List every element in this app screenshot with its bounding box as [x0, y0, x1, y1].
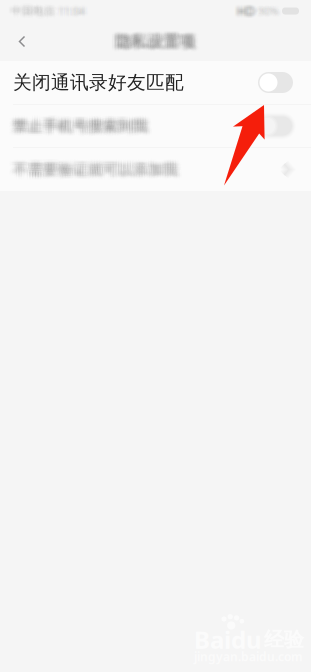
staticText: 禁止手机号搜索到我: [15, 119, 150, 137]
staticText: 隐私设置项: [121, 30, 201, 49]
staticText: 不需要验证就可以添加我: [19, 160, 184, 178]
staticText: 禁止手机号搜索到我: [13, 116, 148, 134]
staticText: 不需要验证就可以添加我: [19, 159, 184, 177]
staticText: 禁止手机号搜索到我: [19, 115, 154, 133]
staticText: 中国电信: [11, 6, 55, 19]
staticText: 禁止手机号搜索到我: [18, 117, 153, 135]
staticText: 11:04: [58, 2, 85, 16]
staticText: 90%: [256, 7, 277, 21]
staticText: 90%: [254, 4, 275, 18]
staticText: 11:04: [62, 1, 89, 15]
staticText: HD: [242, 4, 260, 20]
staticText: 90%: [262, 3, 283, 17]
staticText: 中国电信: [16, 6, 60, 19]
staticText: 隐私设置项: [120, 33, 200, 52]
staticText: 隐私设置项: [115, 31, 195, 50]
staticText: 11:04: [55, 5, 82, 19]
staticText: 11:04: [53, 7, 80, 21]
staticText: 11:04: [61, 2, 88, 16]
staticText: 90%: [257, 5, 278, 19]
staticText: 不需要验证就可以添加我: [10, 159, 175, 177]
staticText: 禁止手机号搜索到我: [11, 121, 146, 139]
staticText: 90%: [254, 5, 275, 19]
staticText: 11:04: [54, 2, 81, 16]
staticText: 中国电信: [16, 5, 60, 18]
staticText: 90%: [253, 6, 274, 20]
staticText: 90%: [256, 1, 277, 15]
staticText: 隐私设置项: [110, 29, 190, 48]
staticText: 中国电信: [8, 7, 52, 20]
staticText: HD: [239, 0, 257, 16]
staticText: 不需要验证就可以添加我: [8, 158, 173, 176]
staticText: 禁止手机号搜索到我: [8, 115, 143, 133]
button[interactable]: 关闭通讯录好友匹配: [0, 61, 311, 104]
staticText: 隐私设置项: [117, 33, 197, 52]
staticText: 11:04: [63, 2, 90, 16]
staticText: 11:04: [54, 6, 81, 20]
staticText: 禁止手机号搜索到我: [6, 118, 141, 136]
staticText: 中国电信: [14, 5, 58, 18]
staticText: 90%: [258, 1, 279, 15]
staticText: 11:04: [55, 4, 82, 18]
staticText: 11:04: [62, 4, 89, 18]
staticText: 中国电信: [12, 7, 56, 20]
staticText: 不需要验证就可以添加我: [19, 163, 184, 181]
staticText: HD: [237, 2, 255, 18]
staticText: 90%: [263, 4, 284, 18]
staticText: 中国电信: [12, 4, 56, 17]
staticText: 11:04: [61, 5, 88, 19]
staticText: 不需要验证就可以添加我: [6, 157, 171, 175]
staticText: 禁止手机号搜索到我: [18, 119, 153, 137]
button[interactable]: 不需要验证就可以添加我: [0, 148, 311, 191]
staticText: 90%: [260, 5, 281, 19]
staticText: 中国电信: [8, 2, 52, 16]
staticText: 中国电信: [6, 7, 50, 20]
staticText: 11:04: [53, 6, 80, 20]
staticText: 隐私设置项: [117, 32, 197, 51]
staticText: 不需要验证就可以添加我: [10, 162, 175, 180]
staticText: 不需要验证就可以添加我: [16, 163, 181, 181]
staticText: 中国电信: [7, 1, 51, 15]
staticText: 不需要验证就可以添加我: [19, 158, 184, 176]
staticText: 隐私设置项: [115, 34, 195, 53]
staticText: 禁止手机号搜索到我: [8, 117, 143, 135]
staticText: 11:04: [58, 7, 85, 21]
button[interactable]: 禁止手机号搜索到我: [0, 104, 311, 147]
staticText: 关闭通讯录好友匹配: [13, 71, 184, 94]
staticText: 中国电信: [12, 6, 56, 19]
staticText: HD: [239, 5, 257, 21]
staticText: 不需要验证就可以添加我: [11, 162, 176, 180]
staticText: 中国电信: [11, 1, 55, 15]
staticText: 11:04: [63, 6, 90, 20]
staticText: HD: [238, 1, 256, 17]
staticText: 隐私设置项: [114, 34, 194, 53]
staticText: 禁止手机号搜索到我: [15, 117, 150, 135]
staticText: 90%: [258, 7, 279, 21]
staticText: 禁止手机号搜索到我: [11, 116, 146, 134]
staticText: 禁止手机号搜索到我: [6, 117, 141, 135]
staticText: 不需要验证就可以添加我: [11, 164, 176, 182]
staticText: 禁止手机号搜索到我: [10, 117, 145, 135]
staticText: 不需要验证就可以添加我: [13, 159, 178, 177]
staticText: 禁止手机号搜索到我: [10, 121, 145, 139]
staticText: 禁止手机号搜索到我: [8, 118, 143, 136]
button[interactable]: Back: [0, 25, 44, 57]
staticText: 中国电信: [12, 2, 56, 16]
staticText: 禁止手机号搜索到我: [15, 118, 150, 136]
staticText: 禁止手机号搜索到我: [16, 115, 151, 133]
staticText: 隐私设置项: [121, 35, 201, 54]
staticText: 90%: [260, 3, 281, 17]
staticText: 隐私设置项: [113, 31, 193, 50]
staticText: 11:04: [61, 3, 88, 17]
staticText: 禁止手机号搜索到我: [11, 115, 146, 133]
staticText: 禁止手机号搜索到我: [13, 119, 148, 137]
staticText: 中国电信: [8, 4, 52, 17]
staticText: 中国电信: [15, 4, 59, 17]
staticText: 中国电信: [10, 5, 54, 18]
staticText: HD: [235, 1, 253, 17]
staticText: 11:04: [63, 5, 90, 19]
staticText: 禁止手机号搜索到我: [19, 121, 154, 139]
staticText: 禁止手机号搜索到我: [18, 118, 153, 136]
staticText: 11:04: [57, 2, 84, 16]
